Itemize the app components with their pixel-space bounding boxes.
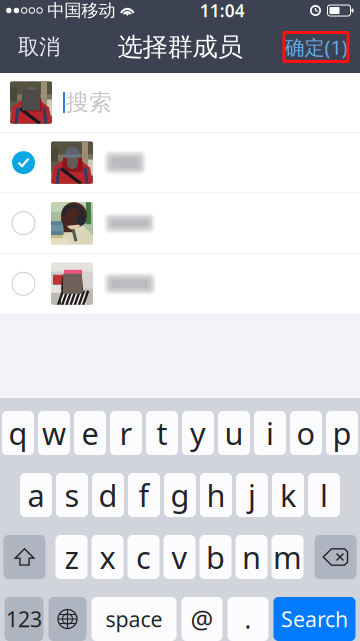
staticText: g	[170, 475, 189, 515]
staticText: y	[190, 413, 206, 453]
button[interactable]: j	[236, 473, 268, 517]
staticText: t	[156, 413, 167, 453]
button[interactable]: w	[38, 411, 70, 455]
button[interactable]: x	[91, 535, 123, 579]
button[interactable]	[0, 133, 360, 193]
staticText: @	[190, 602, 213, 636]
button[interactable]: n	[235, 535, 267, 579]
staticText: 11:04	[200, 0, 245, 22]
button[interactable]: Shift	[3, 535, 45, 579]
button[interactable]: 123	[4, 597, 43, 641]
staticText: u	[224, 413, 243, 453]
staticText: 确定(1)	[284, 34, 347, 60]
button[interactable]: r	[110, 411, 142, 455]
staticText: p	[332, 413, 351, 453]
button[interactable]: s	[56, 473, 88, 517]
staticText: n	[242, 537, 261, 577]
button[interactable]: 取消	[0, 21, 72, 73]
button[interactable]	[0, 254, 360, 314]
staticText: s	[64, 475, 79, 515]
staticText: 123	[6, 605, 42, 633]
button[interactable]	[0, 193, 360, 253]
button[interactable]: y	[182, 411, 214, 455]
button[interactable]: c	[127, 535, 159, 579]
button[interactable]: f	[128, 473, 160, 517]
staticText: o	[296, 413, 315, 453]
staticText: e	[81, 413, 98, 453]
button[interactable]: space	[91, 597, 176, 641]
staticText: 搜索	[66, 89, 112, 116]
staticText: i	[266, 413, 274, 453]
button[interactable]: k	[272, 473, 304, 517]
button[interactable]: g	[164, 473, 196, 517]
staticText: b	[206, 537, 225, 577]
button[interactable]: Delete	[314, 535, 356, 579]
button[interactable]: m	[271, 535, 303, 579]
button[interactable]: v	[163, 535, 195, 579]
staticText: a	[27, 475, 44, 515]
staticText: v	[171, 537, 187, 577]
button[interactable]: q	[2, 411, 34, 455]
staticText: z	[64, 537, 78, 577]
staticText: m	[273, 537, 302, 577]
button[interactable]: p	[326, 411, 358, 455]
button[interactable]: @	[181, 597, 222, 641]
staticText: f	[138, 475, 149, 515]
staticText: Search	[281, 605, 348, 633]
button[interactable]: o	[290, 411, 322, 455]
staticText: c	[136, 537, 151, 577]
staticText: .	[244, 602, 251, 636]
button[interactable]: z	[55, 535, 87, 579]
staticText: w	[42, 413, 66, 453]
button[interactable]: Search	[273, 597, 355, 641]
staticText: q	[8, 413, 27, 453]
staticText: d	[98, 475, 117, 515]
button[interactable]: e	[74, 411, 106, 455]
button[interactable]: 确定(1)	[284, 21, 360, 73]
button[interactable]: t	[146, 411, 178, 455]
button[interactable]: l	[308, 473, 340, 517]
staticText: j	[248, 475, 256, 515]
button[interactable]: h	[200, 473, 232, 517]
staticText: 中国移动	[47, 0, 115, 21]
button[interactable]: Selected member	[0, 81, 52, 123]
staticText: h	[206, 475, 225, 515]
staticText: r	[119, 413, 132, 453]
staticText: 取消	[18, 34, 60, 60]
button[interactable]: Switch keyboard	[48, 597, 86, 641]
button[interactable]: d	[92, 473, 124, 517]
staticText: k	[280, 475, 296, 515]
button[interactable]: .	[227, 597, 268, 641]
staticText: x	[99, 537, 115, 577]
button[interactable]: u	[218, 411, 250, 455]
staticText: space	[105, 605, 162, 633]
button[interactable]: i	[254, 411, 286, 455]
button[interactable]: b	[199, 535, 231, 579]
staticText: l	[320, 475, 328, 515]
button[interactable]: a	[20, 473, 52, 517]
staticText: 选择群成员	[117, 31, 242, 62]
